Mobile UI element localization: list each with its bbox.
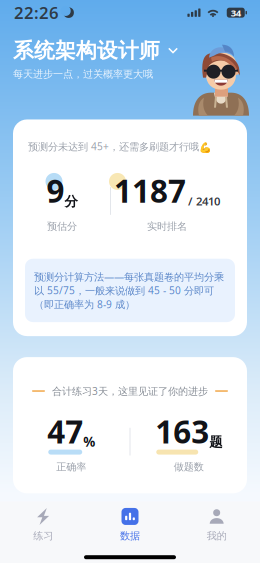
staticText: 正确率	[56, 461, 86, 473]
button[interactable]: 我的	[173, 502, 260, 547]
staticText: %	[83, 432, 95, 451]
staticText: 预测分计算方法——每张真题卷的平均分乘以 55/75，一般来说做到 45 - 5…	[34, 270, 224, 311]
staticText: 47	[47, 410, 83, 453]
staticText: 实时排名	[147, 220, 187, 233]
staticText: 163	[155, 410, 209, 453]
staticText: 1187	[114, 169, 186, 212]
staticText: / 2410	[188, 193, 220, 209]
staticText: 系统架构设计师	[13, 38, 160, 64]
staticText: 我的	[207, 529, 227, 542]
staticText: 22:26	[14, 1, 59, 24]
button[interactable]: 练习	[0, 502, 87, 547]
staticText: 34	[231, 6, 241, 19]
staticText: 分	[64, 193, 77, 210]
staticText: 9	[46, 169, 64, 212]
staticText: 做题数	[174, 461, 204, 473]
staticText: 数据	[120, 529, 140, 542]
button[interactable]: 系统架构设计师	[13, 38, 178, 64]
staticText: 预测分未达到 45+，还需多刷题才行哦💪	[28, 139, 212, 153]
staticText: 每天进步一点，过关概率更大哦	[13, 68, 153, 80]
staticText: 练习	[33, 529, 53, 542]
staticText: 合计练习3天，这里见证了你的进步	[52, 384, 208, 398]
staticText: 预估分	[47, 220, 77, 233]
button[interactable]: 数据	[87, 502, 173, 547]
staticText: 题	[209, 434, 222, 451]
